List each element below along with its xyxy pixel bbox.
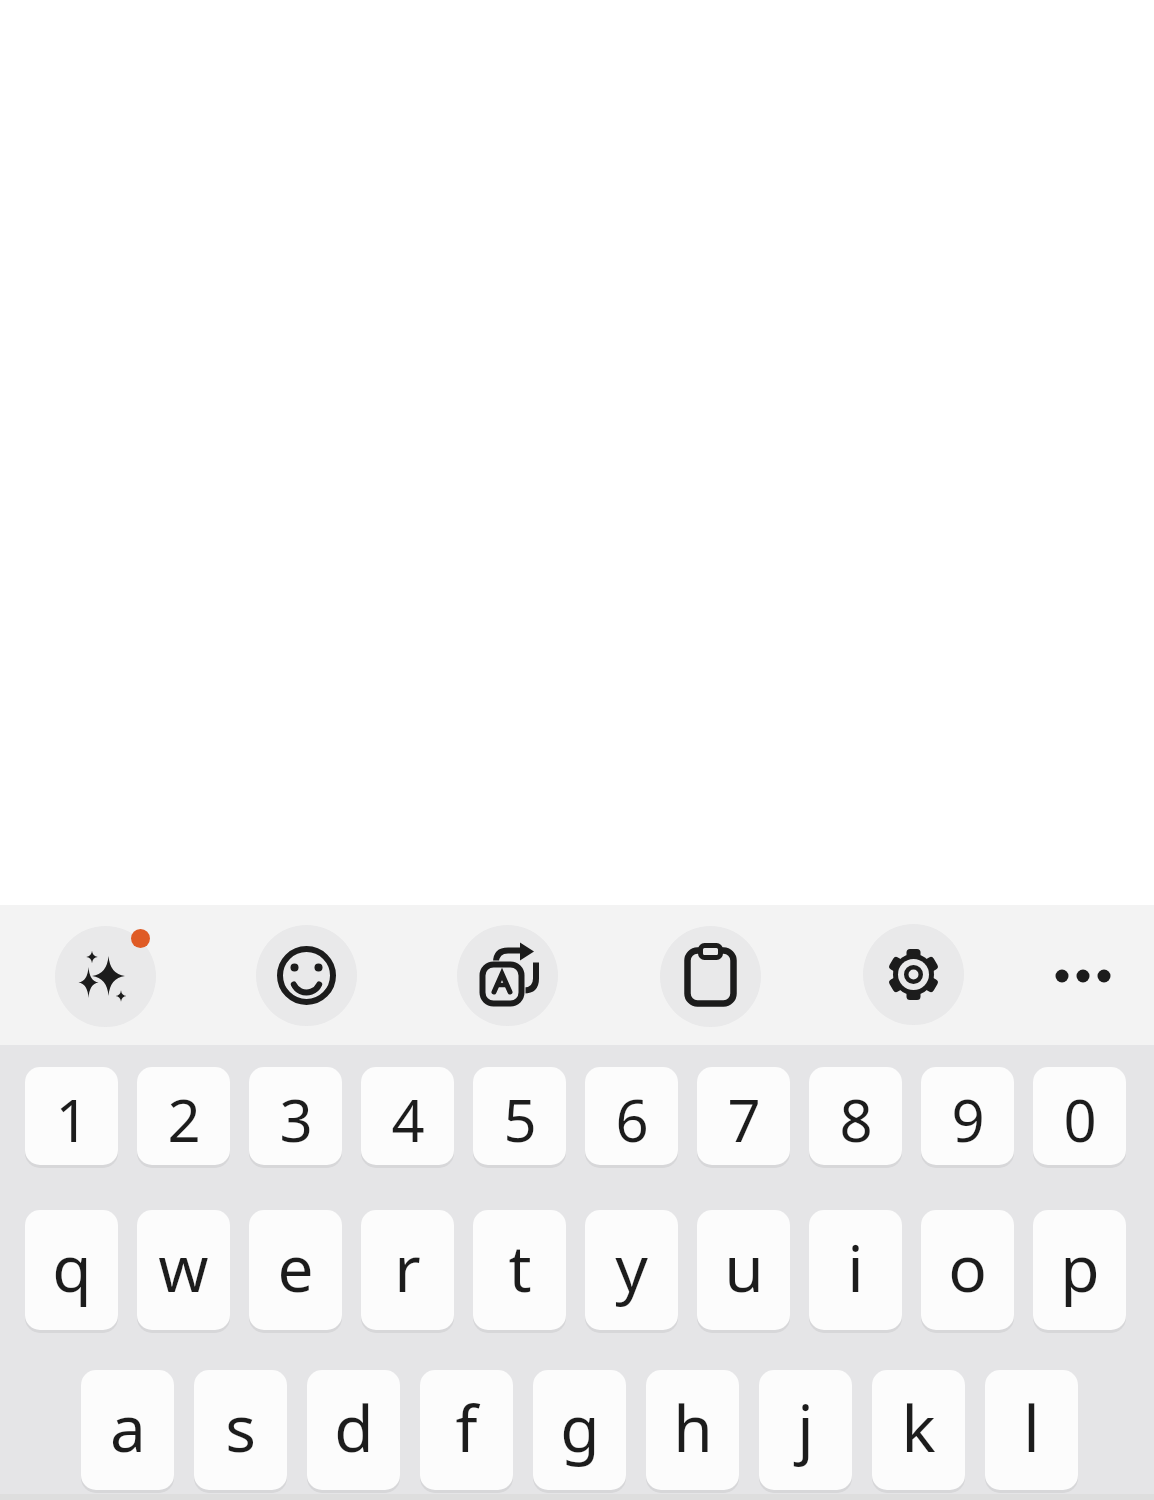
button[interactable]: f <box>420 1370 513 1490</box>
button[interactable]: 9 <box>921 1067 1014 1165</box>
staticText: 2 <box>167 1080 201 1159</box>
button[interactable]: j <box>759 1370 852 1490</box>
button[interactable]: l <box>985 1370 1078 1490</box>
button[interactable]: h <box>646 1370 739 1490</box>
staticText: 5 <box>503 1080 537 1159</box>
button[interactable]: t <box>473 1210 566 1330</box>
button[interactable]: u <box>697 1210 790 1330</box>
button[interactable]: e <box>249 1210 342 1330</box>
button[interactable]: p <box>1033 1210 1126 1330</box>
button[interactable] <box>457 925 558 1026</box>
button[interactable]: 5 <box>473 1067 566 1165</box>
staticText: g <box>560 1384 600 1471</box>
staticText: t <box>508 1224 532 1311</box>
staticText: 0 <box>1063 1080 1097 1159</box>
button[interactable]: o <box>921 1210 1014 1330</box>
staticText: r <box>394 1224 421 1311</box>
staticText: 4 <box>391 1080 425 1159</box>
staticText: l <box>1023 1384 1040 1471</box>
staticText: 1 <box>55 1080 89 1159</box>
button[interactable]: 3 <box>249 1067 342 1165</box>
staticText: i <box>847 1224 864 1311</box>
staticText: q <box>52 1224 92 1311</box>
staticText: k <box>901 1384 936 1471</box>
staticText: 9 <box>951 1080 985 1159</box>
staticText: f <box>455 1384 478 1471</box>
staticText: p <box>1060 1224 1100 1311</box>
staticText: d <box>334 1384 374 1471</box>
button[interactable]: 7 <box>697 1067 790 1165</box>
staticText: s <box>225 1384 256 1471</box>
staticText: w <box>158 1224 209 1311</box>
button[interactable] <box>863 924 964 1025</box>
button[interactable] <box>256 925 357 1026</box>
staticText: u <box>724 1224 764 1311</box>
staticText: 6 <box>615 1080 649 1159</box>
button[interactable]: 8 <box>809 1067 902 1165</box>
button[interactable]: g <box>533 1370 626 1490</box>
staticText: o <box>948 1224 987 1311</box>
button[interactable] <box>1043 936 1123 1016</box>
staticText: 8 <box>839 1080 873 1159</box>
staticText: y <box>615 1224 648 1311</box>
button[interactable]: 4 <box>361 1067 454 1165</box>
staticText: h <box>673 1384 713 1471</box>
button[interactable]: 2 <box>137 1067 230 1165</box>
button[interactable] <box>55 926 156 1027</box>
button[interactable]: r <box>361 1210 454 1330</box>
button[interactable] <box>660 926 761 1027</box>
button[interactable]: k <box>872 1370 965 1490</box>
button[interactable]: 1 <box>25 1067 118 1165</box>
staticText: a <box>110 1384 146 1471</box>
button[interactable]: d <box>307 1370 400 1490</box>
staticText: 7 <box>727 1080 761 1159</box>
button[interactable]: q <box>25 1210 118 1330</box>
staticText: e <box>277 1224 314 1311</box>
button[interactable]: s <box>194 1370 287 1490</box>
button[interactable]: w <box>137 1210 230 1330</box>
button[interactable]: a <box>81 1370 174 1490</box>
button[interactable]: y <box>585 1210 678 1330</box>
button[interactable]: i <box>809 1210 902 1330</box>
button[interactable]: 6 <box>585 1067 678 1165</box>
staticText: j <box>797 1384 814 1471</box>
staticText: 3 <box>279 1080 313 1159</box>
button[interactable]: 0 <box>1033 1067 1126 1165</box>
